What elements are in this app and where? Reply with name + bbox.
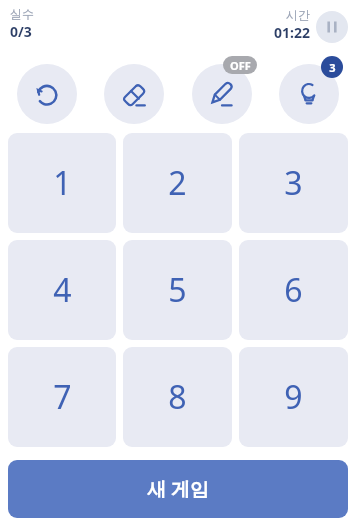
staticText: 새 게임 [147, 476, 209, 502]
button[interactable]: 4 [8, 240, 116, 340]
staticText: OFF [230, 58, 251, 73]
staticText: 3 [329, 60, 336, 75]
button[interactable]: Pause [316, 11, 348, 43]
staticText: 4 [53, 268, 72, 312]
staticText: 실수 [10, 6, 34, 21]
staticText: 2 [168, 161, 187, 205]
button[interactable]: 9 [239, 347, 348, 447]
button[interactable]: Erase [104, 64, 164, 124]
staticText: 9 [284, 375, 303, 419]
button[interactable]: 7 [8, 347, 116, 447]
staticText: 3 [284, 161, 303, 205]
button[interactable]: 5 [123, 240, 232, 340]
staticText: 6 [284, 268, 303, 312]
button[interactable]: Undo [17, 64, 77, 124]
staticText: 1 [53, 161, 72, 205]
staticText: 8 [168, 375, 187, 419]
button[interactable]: 8 [123, 347, 232, 447]
staticText: 0/3 [10, 22, 32, 41]
staticText: 시간 [286, 7, 310, 22]
button[interactable]: 1 [8, 133, 116, 233]
staticText: 7 [53, 375, 72, 419]
button[interactable]: 새 게임 [8, 460, 348, 518]
button[interactable]: 3 [239, 133, 348, 233]
staticText: 5 [168, 268, 187, 312]
button[interactable]: 6 [239, 240, 348, 340]
button[interactable]: Notes [192, 64, 252, 124]
button[interactable]: 2 [123, 133, 232, 233]
button[interactable]: Hint [279, 64, 339, 124]
staticText: 01:22 [274, 23, 310, 42]
